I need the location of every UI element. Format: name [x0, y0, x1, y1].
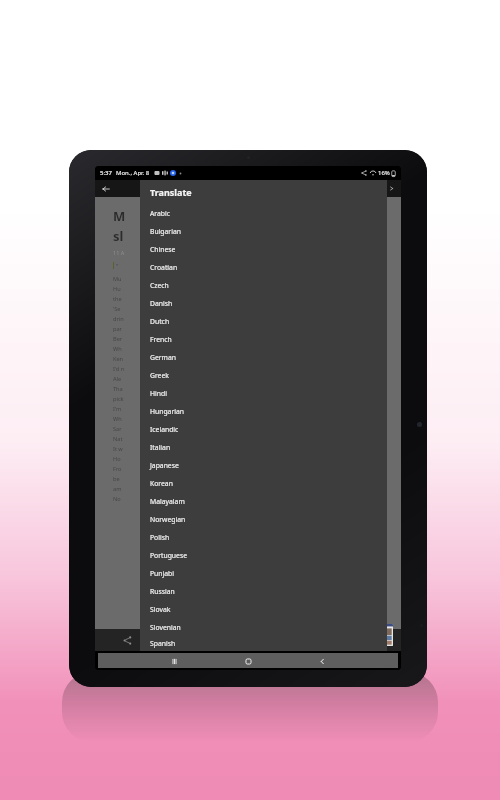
staticText: It w [113, 445, 123, 453]
staticText: Croatian [150, 263, 178, 272]
button[interactable]: Hindi [140, 384, 387, 402]
staticText: Wh [113, 415, 122, 423]
button[interactable]: Spanish [140, 636, 387, 651]
staticText: Dutch [150, 317, 170, 326]
button[interactable]: Back [315, 654, 329, 668]
staticText: Chinese [150, 245, 176, 254]
staticText: Ken [113, 355, 124, 363]
staticText: I'm [113, 405, 122, 413]
staticText: Icelandic [150, 425, 179, 434]
staticText: No [113, 495, 121, 503]
staticText: Hungarian [150, 407, 185, 416]
staticText: Mu [113, 275, 122, 283]
staticText: Hindi [150, 389, 167, 398]
staticText: Arabic [150, 209, 171, 218]
staticText: Norwegian [150, 515, 186, 524]
staticText: Nat [113, 435, 123, 443]
staticText: German [150, 353, 176, 362]
button[interactable]: Dutch [140, 312, 387, 330]
staticText: I'd n [113, 365, 125, 373]
staticText: “ [116, 262, 119, 269]
button[interactable]: Bulgarian [140, 222, 387, 240]
staticText: Slovak [150, 605, 171, 614]
staticText: 16% [378, 169, 390, 177]
staticText: 11 A [113, 249, 125, 256]
staticText: 5:37 [100, 169, 112, 177]
button[interactable]: Hungarian [140, 402, 387, 420]
staticText: French [150, 335, 172, 344]
staticText: Russian [150, 587, 175, 596]
button[interactable]: Japanese [140, 456, 387, 474]
button[interactable]: Recent apps [167, 654, 181, 668]
staticText: Ber [113, 335, 123, 343]
staticText: Spanish [150, 639, 176, 648]
staticText: Translate [150, 186, 192, 198]
staticText: Korean [150, 479, 173, 488]
staticText: Punjabi [150, 569, 175, 578]
staticText: Polish [150, 533, 170, 542]
staticText: Czech [150, 281, 169, 290]
button[interactable]: Home [241, 654, 255, 668]
button[interactable]: Punjabi [140, 564, 387, 582]
staticText: sl [113, 227, 124, 245]
staticText: Sar [113, 425, 122, 433]
staticText: Ale [113, 375, 122, 383]
button[interactable]: Portuguese [140, 546, 387, 564]
button[interactable]: Polish [140, 528, 387, 546]
staticText: Hu [113, 285, 121, 293]
staticText: pick [113, 395, 124, 403]
staticText: Mon., Apr. 8 [116, 169, 150, 177]
button[interactable]: Greek [140, 366, 387, 384]
button[interactable]: Slovak [140, 600, 387, 618]
staticText: Italian [150, 443, 171, 452]
button[interactable]: Croatian [140, 258, 387, 276]
button[interactable]: Malayalam [140, 492, 387, 510]
staticText: Danish [150, 299, 173, 308]
button[interactable]: Icelandic [140, 420, 387, 438]
button[interactable]: Arabic [140, 204, 387, 222]
staticText: am [113, 485, 122, 493]
staticText: Fro [113, 465, 122, 473]
button[interactable]: Czech [140, 276, 387, 294]
button[interactable]: Chinese [140, 240, 387, 258]
button[interactable]: Korean [140, 474, 387, 492]
staticText: Japanese [150, 461, 179, 470]
staticText: the [113, 295, 122, 303]
staticText: drin [113, 315, 124, 323]
button[interactable]: Norwegian [140, 510, 387, 528]
button[interactable]: Slovenian [140, 618, 387, 636]
button[interactable]: Back [99, 182, 113, 196]
staticText: 'Se [113, 305, 121, 313]
staticText: Greek [150, 371, 169, 380]
staticText: Tha [113, 385, 123, 393]
staticText: be [113, 475, 120, 483]
staticText: Slovenian [150, 623, 181, 632]
staticText: Malayalam [150, 497, 185, 506]
staticText: par [113, 325, 122, 333]
staticText: Portuguese [150, 551, 187, 560]
button[interactable]: Next article [386, 183, 397, 194]
staticText: M [113, 207, 126, 225]
button[interactable]: French [140, 330, 387, 348]
staticText: Wh [113, 345, 122, 353]
button[interactable]: Article thumbnail [367, 624, 393, 646]
button[interactable]: German [140, 348, 387, 366]
button[interactable]: Russian [140, 582, 387, 600]
button[interactable]: Italian [140, 438, 387, 456]
staticText: Ho [113, 455, 121, 463]
button[interactable]: Danish [140, 294, 387, 312]
button[interactable]: Share [119, 632, 135, 648]
staticText: Bulgarian [150, 227, 181, 236]
